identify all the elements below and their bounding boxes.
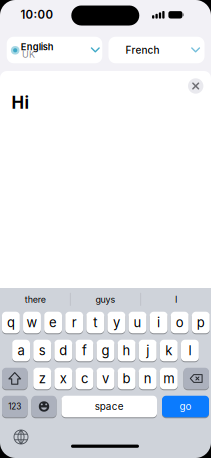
- staticText: h: [123, 343, 131, 358]
- staticText: k: [165, 343, 172, 358]
- staticText: v: [102, 371, 109, 386]
- staticText: d: [59, 343, 67, 358]
- staticText: 10:00: [20, 8, 53, 22]
- staticText: b: [123, 371, 131, 386]
- staticText: g: [101, 343, 109, 358]
- staticText: j: [146, 343, 149, 358]
- staticText: t: [93, 315, 97, 330]
- staticText: m: [163, 371, 174, 386]
- staticText: l: [188, 343, 191, 358]
- staticText: y: [113, 315, 120, 330]
- staticText: e: [49, 315, 57, 330]
- staticText: guys: [95, 294, 115, 305]
- staticText: u: [133, 315, 141, 330]
- staticText: a: [18, 343, 25, 358]
- staticText: UK: [22, 49, 35, 60]
- staticText: z: [39, 371, 46, 386]
- staticText: i: [157, 315, 160, 330]
- staticText: French: [125, 44, 159, 56]
- staticText: c: [81, 371, 88, 386]
- staticText: r: [72, 315, 77, 330]
- staticText: English: [21, 41, 54, 53]
- staticText: I: [175, 294, 177, 305]
- staticText: 123: [8, 401, 21, 411]
- staticText: there: [25, 294, 46, 305]
- staticText: w: [26, 315, 37, 330]
- staticText: o: [176, 315, 184, 330]
- staticText: n: [144, 371, 152, 386]
- staticText: space: [95, 400, 124, 412]
- staticText: go: [179, 400, 191, 412]
- staticText: x: [60, 371, 67, 386]
- staticText: Hi: [12, 92, 30, 113]
- staticText: p: [197, 315, 205, 330]
- staticText: q: [7, 315, 15, 330]
- staticText: f: [82, 343, 87, 358]
- staticText: s: [39, 343, 46, 358]
